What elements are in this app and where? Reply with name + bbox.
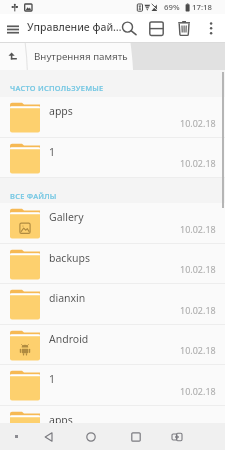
button[interactable]: Android bbox=[0, 325, 225, 364]
staticText: dianxin bbox=[49, 291, 86, 305]
staticText: Внутренняя память bbox=[34, 50, 128, 63]
button[interactable]: Split screen bbox=[143, 14, 170, 42]
button[interactable]: Go up bbox=[0, 43, 25, 70]
button[interactable]: Navigation menu bbox=[1, 14, 27, 42]
button[interactable]: Search bbox=[114, 14, 141, 42]
button[interactable]: dianxin bbox=[0, 284, 225, 324]
button[interactable]: 1 bbox=[0, 365, 225, 405]
button[interactable]: Back bbox=[37, 423, 61, 450]
staticText: apps bbox=[49, 413, 73, 427]
button[interactable]: More options bbox=[198, 14, 225, 42]
staticText: 10.02.18 bbox=[180, 117, 216, 129]
staticText: 10.02.18 bbox=[180, 344, 216, 356]
staticText: 10.02.18 bbox=[180, 223, 216, 235]
button[interactable]: Внутренняя память bbox=[33, 47, 129, 66]
staticText: backups bbox=[49, 251, 90, 265]
staticText: 10.02.18 bbox=[180, 426, 216, 438]
button[interactable]: apps bbox=[0, 406, 225, 446]
button[interactable]: Delete bbox=[171, 14, 198, 42]
staticText: 1 bbox=[49, 145, 56, 159]
staticText: Gallery bbox=[49, 210, 84, 224]
button[interactable]: Recent apps bbox=[124, 423, 148, 450]
staticText: 10.02.18 bbox=[180, 304, 216, 316]
staticText: apps bbox=[49, 104, 73, 118]
staticText: Android bbox=[49, 332, 89, 346]
staticText: ЧАСТО ИСПОЛЬЗУЕМЫЕ bbox=[10, 83, 104, 93]
button[interactable]: 1 bbox=[0, 138, 225, 177]
staticText: ВСЕ ФАЙЛЫ bbox=[10, 191, 57, 201]
staticText: 10.02.18 bbox=[180, 157, 216, 169]
staticText: 69% bbox=[164, 2, 180, 13]
staticText: 1 bbox=[49, 372, 56, 386]
button[interactable]: Home bbox=[79, 423, 103, 450]
staticText: 10.02.18 bbox=[180, 385, 216, 397]
staticText: Управление фай… bbox=[27, 20, 122, 34]
button[interactable]: Multi window bbox=[165, 423, 189, 450]
staticText: 10.02.18 bbox=[180, 263, 216, 275]
button[interactable]: backups bbox=[0, 244, 225, 283]
button[interactable]: Gallery bbox=[0, 203, 225, 243]
button[interactable]: apps bbox=[0, 97, 225, 137]
staticText: 17:18 bbox=[192, 2, 212, 13]
